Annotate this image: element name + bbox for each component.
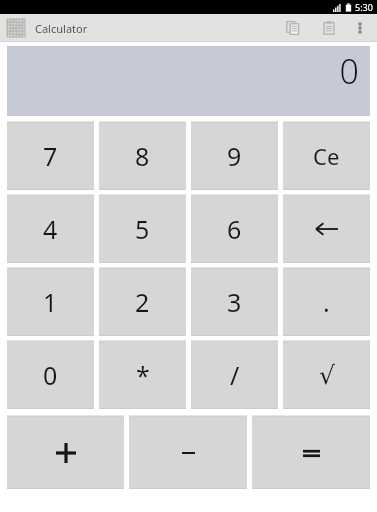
button[interactable] [252,416,370,489]
button[interactable]: 3 [191,268,278,336]
staticText: Ce [313,141,340,171]
button[interactable]: Paste [311,14,347,42]
button[interactable]: 9 [191,122,278,190]
staticText: 9 [227,139,242,173]
staticText: 0 [339,48,359,94]
staticText: 4 [43,212,58,246]
button[interactable]: 0 [7,341,94,409]
staticText: 7 [43,139,58,173]
staticText: 0 [43,358,58,392]
button[interactable]: 6 [191,195,278,263]
staticText: 3 [227,285,242,319]
button[interactable]: 1 [7,268,94,336]
button[interactable]: 7 [7,122,94,190]
button[interactable]: . [283,268,370,336]
button[interactable]: / [191,341,278,409]
button[interactable]: 8 [99,122,186,190]
button[interactable]: 2 [99,268,186,336]
button[interactable] [7,416,124,489]
staticText: 5:30 [355,1,373,13]
staticText: 6 [227,212,242,246]
staticText: 1 [43,285,58,319]
button[interactable]: Copy [275,14,311,42]
button[interactable]: √ [283,341,370,409]
staticText: * [136,358,150,392]
staticText: Calculator [35,21,88,36]
button[interactable]: More options [347,14,373,42]
staticText: 2 [135,285,150,319]
button[interactable]: * [99,341,186,409]
staticText: . [323,285,330,319]
button[interactable]: 4 [7,195,94,263]
staticText: / [230,358,240,392]
button[interactable]: Ce [283,122,370,190]
button[interactable] [129,416,247,489]
staticText: √ [319,361,335,390]
button[interactable]: 5 [99,195,186,263]
staticText: 5 [135,212,150,246]
staticText: 8 [135,139,150,173]
button[interactable] [283,195,370,263]
